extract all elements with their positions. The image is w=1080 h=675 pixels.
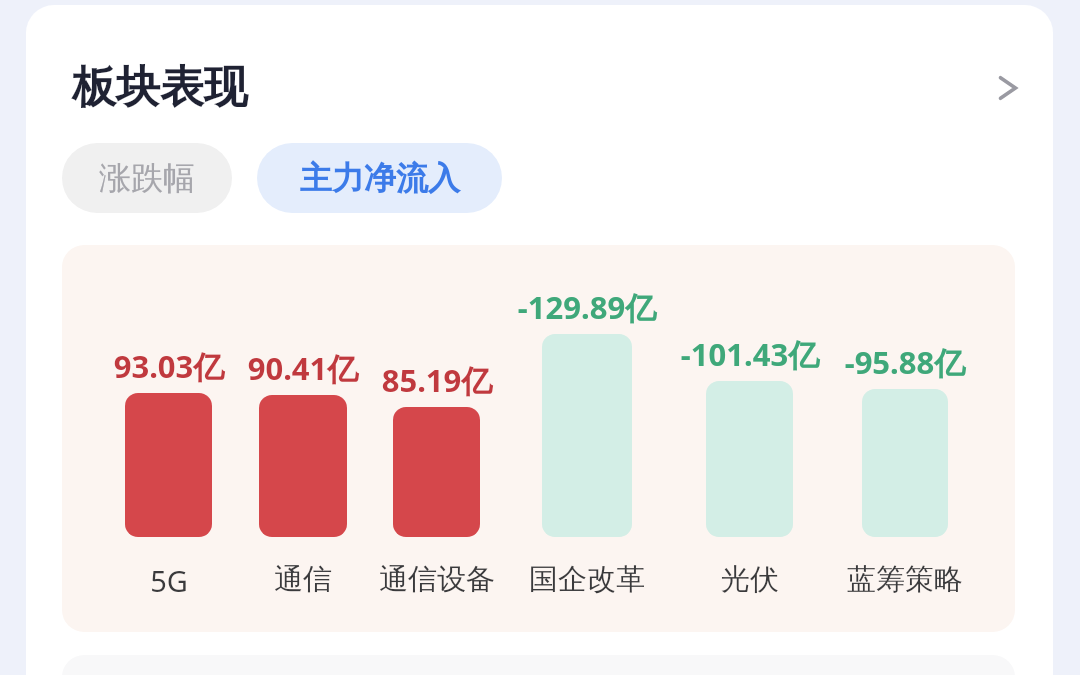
staticText: -129.89亿 (472, 286, 702, 330)
button[interactable]: 涨跌幅 (62, 143, 232, 213)
staticText: 通信设备 (312, 561, 562, 603)
button[interactable] (62, 245, 1015, 632)
staticText: 主力净流入 (300, 158, 460, 198)
staticText: 85.19亿 (322, 359, 552, 403)
button[interactable]: 板块表现 (26, 40, 1053, 136)
staticText: 蓝筹策略 (780, 561, 1030, 603)
staticText: 5G (44, 561, 294, 603)
staticText: 90.41亿 (188, 347, 418, 391)
staticText: 国企改革 (462, 561, 712, 603)
staticText: 光伏 (625, 561, 875, 603)
button[interactable]: 主力净流入 (257, 143, 502, 213)
staticText: 通信 (178, 561, 428, 603)
other: 查看更多板块表现 (988, 66, 1032, 110)
staticText: -101.43亿 (635, 333, 865, 377)
staticText: -95.88亿 (790, 341, 1020, 385)
staticText: 板块表现 (72, 60, 248, 115)
staticText: 93.03亿 (54, 345, 284, 389)
staticText: 涨跌幅 (99, 158, 195, 198)
